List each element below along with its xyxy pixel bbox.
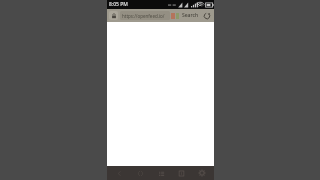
button[interactable]: Site information	[109, 11, 118, 20]
staticText: Search	[182, 12, 199, 19]
button[interactable]: https://openfeed.io/fil	[120, 11, 170, 20]
staticText: https://openfeed.io/fil	[122, 13, 168, 19]
staticText: 8:05 PM	[109, 1, 128, 8]
button[interactable]: Settings	[193, 166, 211, 180]
button[interactable]: Search	[181, 12, 200, 19]
button[interactable]: Home	[172, 166, 190, 180]
button[interactable]: Reload page	[202, 11, 212, 21]
button[interactable]: Tabs	[152, 166, 170, 180]
